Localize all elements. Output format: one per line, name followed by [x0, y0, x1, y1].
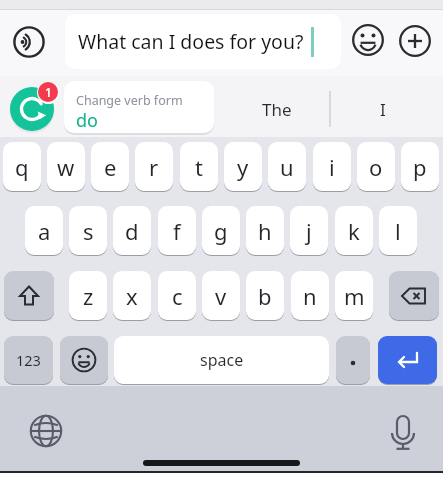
staticText: q — [15, 152, 29, 182]
staticText: k — [348, 216, 360, 246]
staticText: r — [149, 152, 159, 182]
staticText: b — [258, 281, 272, 311]
staticText: v — [215, 281, 227, 311]
button[interactable]: q — [3, 142, 41, 191]
button[interactable] — [389, 271, 439, 320]
staticText: m — [344, 281, 365, 311]
staticText: x — [126, 281, 138, 311]
button[interactable]: i — [313, 142, 351, 191]
button[interactable]: a — [25, 206, 63, 255]
button[interactable]: s — [69, 206, 107, 255]
button[interactable]: w — [47, 142, 85, 191]
button[interactable] — [60, 336, 108, 384]
staticText: u — [280, 152, 294, 182]
button[interactable] — [13, 26, 45, 58]
button[interactable]: 123 — [4, 336, 53, 384]
staticText: The — [262, 98, 292, 121]
button[interactable]: j — [290, 206, 328, 255]
staticText: do — [76, 108, 98, 133]
button[interactable]: space — [114, 336, 329, 384]
button[interactable]: h — [246, 206, 284, 255]
button[interactable]: z — [69, 271, 107, 320]
staticText: l — [395, 216, 401, 246]
staticText: i — [329, 152, 335, 182]
button[interactable]: r — [135, 142, 173, 191]
button[interactable]: Change verb form — [64, 81, 214, 133]
staticText: What can I does for you? — [78, 28, 304, 55]
staticText: d — [125, 216, 139, 246]
button[interactable]: k — [335, 206, 373, 255]
button[interactable]: d — [113, 206, 151, 255]
staticText: n — [303, 281, 317, 311]
button[interactable]: v — [202, 271, 240, 320]
staticText: p — [413, 152, 427, 182]
staticText: a — [38, 216, 51, 246]
button[interactable] — [399, 25, 431, 57]
button[interactable]: p — [401, 142, 439, 191]
button[interactable]: b — [246, 271, 284, 320]
staticText: y — [237, 152, 249, 182]
button[interactable] — [29, 414, 63, 448]
button[interactable]: x — [113, 271, 151, 320]
staticText: h — [258, 216, 272, 246]
button[interactable]: l — [379, 206, 417, 255]
staticText: Change verb form — [76, 92, 183, 109]
button[interactable] — [10, 87, 54, 131]
staticText: w — [57, 152, 75, 182]
staticText: c — [172, 281, 183, 311]
staticText: I — [380, 98, 386, 121]
button[interactable]: u — [268, 142, 306, 191]
button[interactable]: g — [202, 206, 240, 255]
button[interactable]: The — [235, 88, 319, 130]
button[interactable]: f — [158, 206, 196, 255]
button[interactable]: e — [91, 142, 129, 191]
button[interactable]: m — [335, 271, 373, 320]
staticText: z — [83, 281, 94, 311]
staticText: j — [306, 216, 312, 246]
staticText: o — [369, 152, 383, 182]
staticText: s — [83, 216, 94, 246]
staticText: t — [195, 152, 203, 182]
button[interactable] — [352, 24, 384, 56]
button[interactable] — [336, 336, 370, 384]
button[interactable]: What can I does for you? — [65, 14, 341, 69]
button[interactable]: n — [291, 271, 329, 320]
button[interactable]: y — [224, 142, 262, 191]
button[interactable]: I — [341, 88, 425, 130]
button[interactable] — [378, 336, 437, 384]
button[interactable]: o — [357, 142, 395, 191]
button[interactable]: t — [180, 142, 218, 191]
button[interactable]: c — [158, 271, 196, 320]
staticText: f — [173, 216, 181, 246]
staticText: space — [200, 349, 244, 371]
staticText: 1 — [45, 84, 52, 100]
button[interactable] — [4, 271, 54, 320]
staticText: g — [214, 216, 228, 246]
staticText: e — [104, 152, 117, 182]
button[interactable] — [387, 413, 419, 451]
staticText: 123 — [16, 350, 41, 370]
